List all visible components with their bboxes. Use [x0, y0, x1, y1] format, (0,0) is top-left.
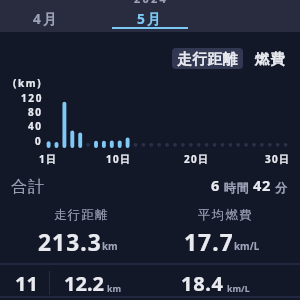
staticText: km/L: [227, 283, 250, 295]
button[interactable]: 2024: [123, 0, 178, 32]
staticText: 10日: [106, 152, 132, 166]
staticText: 30日: [265, 152, 291, 166]
staticText: km: [102, 240, 118, 253]
button[interactable]: 11: [0, 268, 300, 298]
staticText: (km): [13, 76, 43, 90]
staticText: 11: [15, 270, 38, 297]
staticText: 5月: [137, 9, 164, 28]
staticText: 合計: [11, 177, 45, 197]
staticText: km/L: [234, 240, 260, 253]
staticText: 燃費: [255, 50, 286, 68]
staticText: 17.7: [184, 227, 234, 258]
staticText: 80: [28, 105, 43, 119]
staticText: 分: [275, 180, 287, 195]
staticText: 1日: [39, 152, 58, 166]
staticText: 12.2: [64, 270, 104, 297]
button[interactable]: 燃費: [250, 48, 291, 69]
staticText: km: [107, 283, 122, 295]
button[interactable]: 走行距離: [172, 48, 243, 69]
staticText: 213.3: [38, 227, 102, 258]
staticText: 時間: [223, 180, 249, 195]
staticText: 走行距離: [54, 207, 110, 223]
staticText: 120: [21, 91, 43, 105]
button[interactable]: 4月: [19, 0, 74, 32]
staticText: 20日: [184, 152, 210, 166]
staticText: 40: [28, 119, 43, 133]
staticText: 走行距離: [177, 50, 238, 68]
staticText: 平均燃費: [198, 207, 254, 223]
staticText: 0: [35, 134, 43, 148]
staticText: 4月: [33, 9, 60, 28]
staticText: 2024: [134, 0, 168, 6]
staticText: 6: [211, 175, 220, 195]
staticText: 42: [253, 175, 271, 195]
staticText: 18.4: [181, 270, 224, 297]
